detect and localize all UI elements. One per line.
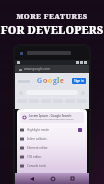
button[interactable]: Inline callouts xyxy=(20,134,84,143)
button[interactable]: Lorem Ipsum - Google Search xyxy=(20,112,84,123)
staticText: Sign in xyxy=(74,79,84,83)
button[interactable]: Element editor xyxy=(20,143,84,152)
staticText: o xyxy=(48,76,53,86)
staticText: Inline callouts xyxy=(27,137,84,141)
staticText: G xyxy=(37,76,43,86)
staticText: g xyxy=(53,76,57,86)
staticText: Lorem Ipsum - Google Search xyxy=(29,114,72,118)
staticText: Element editor xyxy=(27,146,84,150)
button[interactable]: Console tools xyxy=(20,161,84,170)
staticText: Highlight mode xyxy=(27,128,78,132)
button[interactable]: Home xyxy=(48,174,57,183)
button[interactable]: Recents xyxy=(68,174,77,183)
staticText: www.google.com xyxy=(24,67,50,71)
button[interactable]: Back xyxy=(27,174,36,183)
staticText: l xyxy=(57,76,60,86)
staticText: MORE FEATURES xyxy=(0,11,104,21)
button[interactable]: CSS editor xyxy=(20,152,84,161)
button[interactable]: Highlight mode xyxy=(20,125,84,134)
staticText: CSS editor xyxy=(27,155,84,159)
staticText: FOR DEVELOPERS xyxy=(0,23,104,37)
staticText: e xyxy=(60,76,64,86)
staticText: www.google.com/search?q=lorem+ipsum xyxy=(29,118,74,121)
staticText: o xyxy=(43,76,48,86)
staticText: Console tools xyxy=(27,164,84,168)
